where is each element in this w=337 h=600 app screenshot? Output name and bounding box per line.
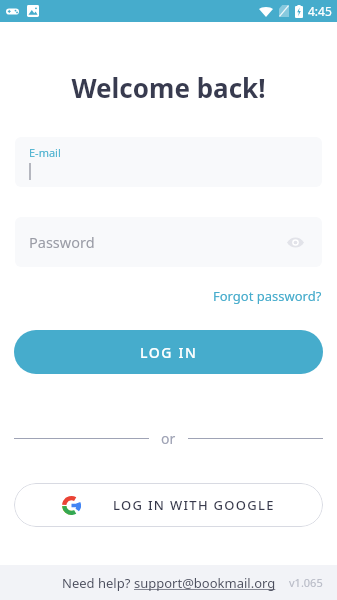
button[interactable]: E-mail xyxy=(15,137,322,187)
staticText: LOG IN WITH GOOGLE xyxy=(113,496,275,514)
staticText: LOG IN xyxy=(140,343,198,362)
button[interactable]: LOG IN xyxy=(14,330,323,374)
staticText: Need help? xyxy=(62,574,134,592)
staticText: 4:45 xyxy=(308,3,332,19)
button[interactable]: support@bookmail.org xyxy=(134,574,276,592)
staticText: v1.065 xyxy=(289,575,323,590)
button[interactable]: LOG IN WITH GOOGLE xyxy=(14,483,323,527)
button[interactable]: Password xyxy=(15,217,322,267)
staticText: E-mail xyxy=(29,145,61,160)
button[interactable]: Forgot password? xyxy=(213,285,337,307)
button[interactable]: Show password xyxy=(278,225,312,259)
staticText: Welcome back! xyxy=(0,70,337,105)
staticText: Password xyxy=(29,232,95,252)
staticText: or xyxy=(161,429,176,448)
